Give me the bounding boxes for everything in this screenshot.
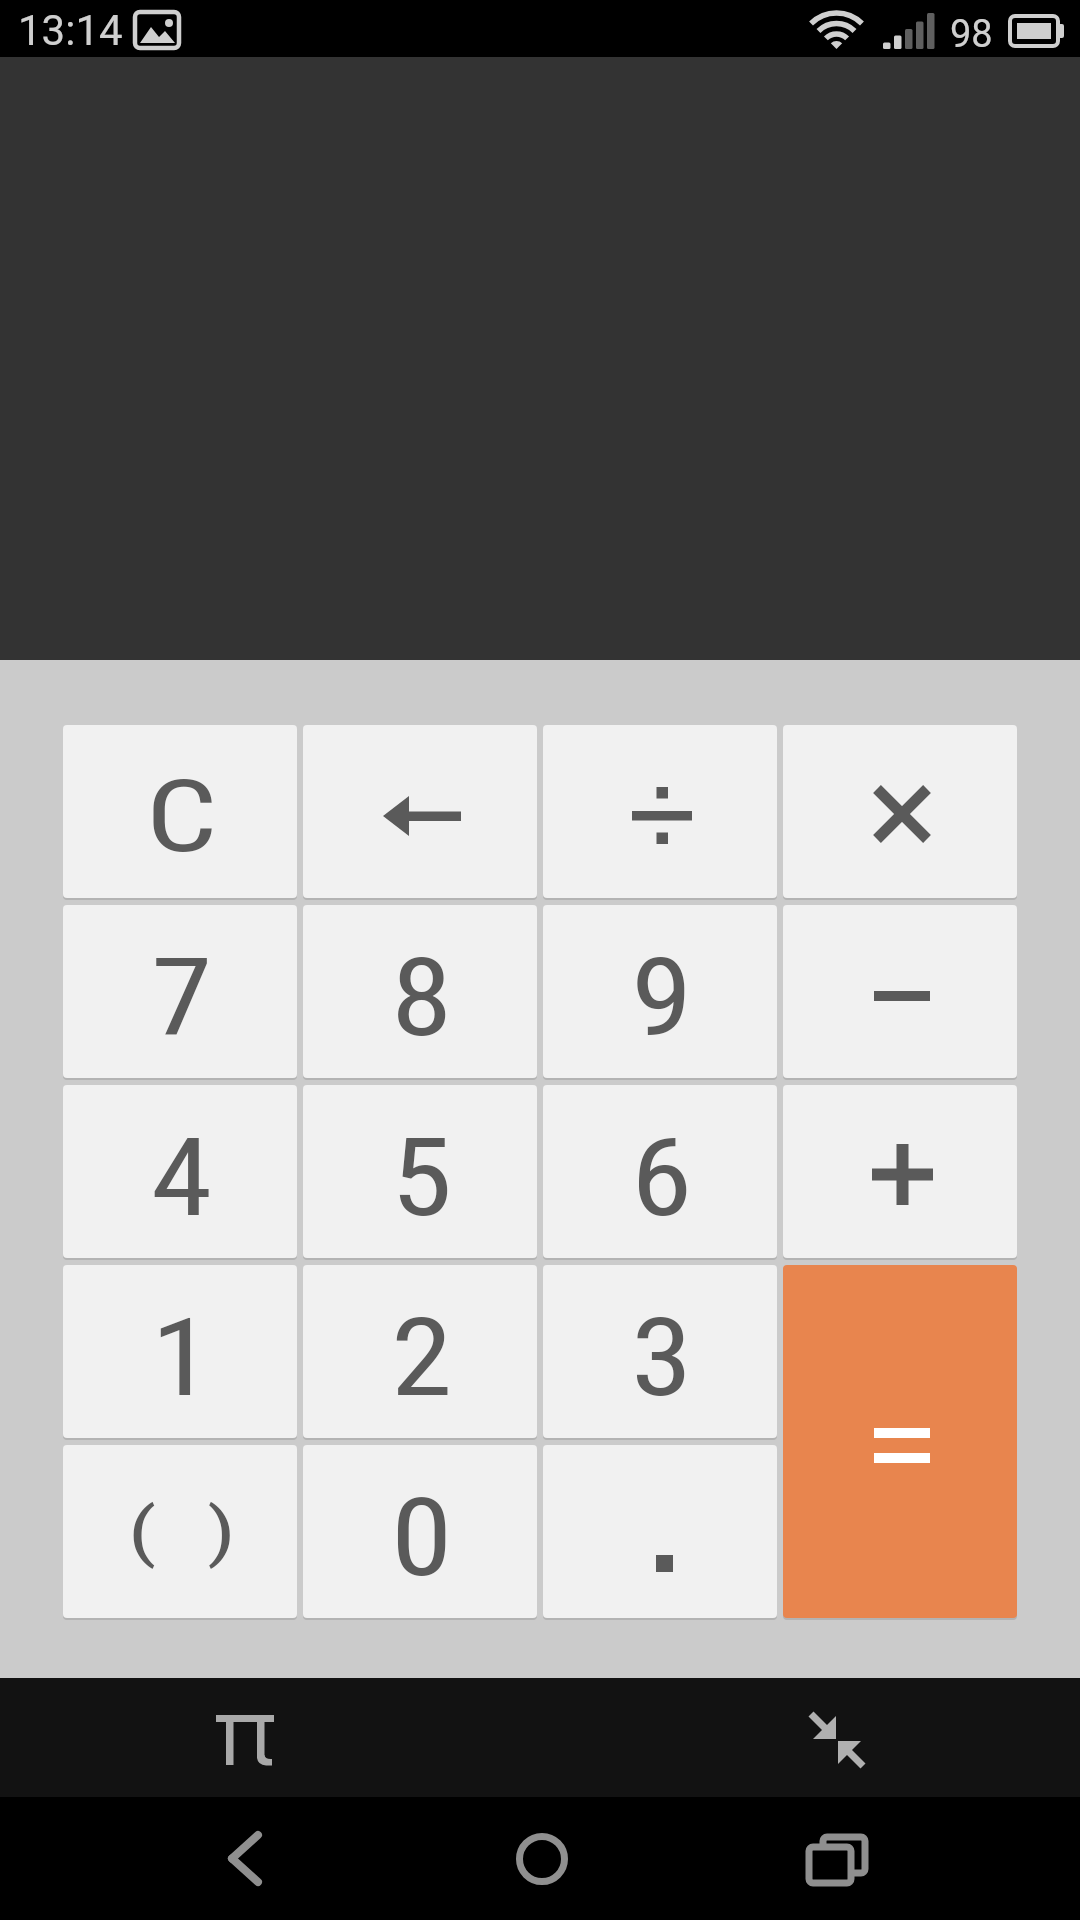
staticText: 8 [391,935,453,1062]
button[interactable]: 8 [303,905,537,1078]
button[interactable] [303,725,537,898]
button[interactable] [185,1797,305,1920]
button[interactable]: 0 [303,1445,537,1618]
button[interactable]: 2 [303,1265,537,1438]
button[interactable] [783,1265,1017,1618]
button[interactable] [480,1797,600,1920]
staticText: 3 [631,1295,693,1422]
button[interactable]: C [63,725,297,898]
button[interactable]: 6 [543,1085,777,1258]
staticText: 5 [391,1115,453,1242]
staticText: ) [207,1493,236,1570]
staticText: 9 [631,935,693,1062]
staticText: 0 [391,1475,453,1602]
button[interactable] [775,1797,895,1920]
staticText: 98 [950,12,993,57]
staticText: 6 [631,1115,693,1242]
button[interactable] [185,1678,305,1797]
button[interactable]: 5 [303,1085,537,1258]
button[interactable]: 1 [63,1265,297,1438]
button[interactable] [783,1085,1017,1258]
button[interactable] [775,1678,895,1797]
button[interactable]: 7 [63,905,297,1078]
staticText: 1 [151,1295,213,1422]
staticText: C [146,757,218,875]
staticText: 13:14 [18,6,123,55]
button[interactable]: 4 [63,1085,297,1258]
staticText: 7 [151,935,213,1062]
button[interactable] [543,1445,777,1618]
button[interactable]: 3 [543,1265,777,1438]
button[interactable]: ( [63,1445,297,1618]
staticText: ( [128,1493,157,1570]
button[interactable]: 9 [543,905,777,1078]
staticText: 4 [151,1115,213,1242]
staticText: 2 [391,1295,453,1422]
button[interactable] [783,725,1017,898]
button[interactable] [783,905,1017,1078]
button[interactable] [543,725,777,898]
